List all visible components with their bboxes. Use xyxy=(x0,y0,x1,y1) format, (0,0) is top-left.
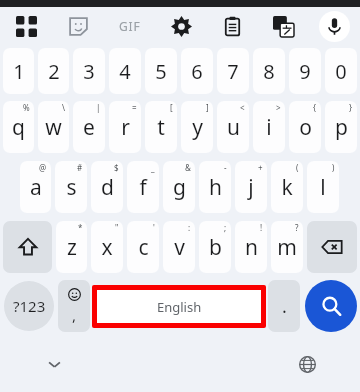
button[interactable]: Search xyxy=(305,280,357,332)
button[interactable]: y xyxy=(181,101,213,153)
button[interactable]: f xyxy=(127,161,159,213)
button[interactable]: Translate xyxy=(258,7,309,45)
button[interactable]: k xyxy=(271,161,303,213)
button[interactable]: h xyxy=(199,161,231,213)
staticText: i xyxy=(266,113,272,142)
staticText: a xyxy=(30,173,42,202)
button[interactable]: Emoji and comma xyxy=(58,280,90,332)
staticText: # xyxy=(77,162,83,173)
staticText: English xyxy=(157,298,202,316)
staticText: $ xyxy=(114,162,119,173)
button[interactable]: l xyxy=(307,161,339,213)
staticText: 5 xyxy=(155,58,167,85)
staticText: @ xyxy=(39,162,47,173)
staticText: 4 xyxy=(119,58,131,85)
button[interactable]: Hide keyboard xyxy=(38,348,70,380)
staticText: " xyxy=(115,222,119,233)
button[interactable]: 3 xyxy=(73,48,105,94)
staticText: [ xyxy=(170,102,173,113)
button[interactable]: Stickers xyxy=(52,7,104,45)
button[interactable]: 0 xyxy=(325,48,357,94)
button[interactable]: Change language xyxy=(291,348,323,380)
staticText: v xyxy=(174,233,185,262)
button[interactable]: e xyxy=(73,101,105,153)
button[interactable]: j xyxy=(235,161,267,213)
staticText: k xyxy=(281,173,293,202)
staticText: GIF xyxy=(119,18,141,34)
staticText: h xyxy=(209,173,222,202)
staticText: ) xyxy=(332,162,335,173)
button[interactable]: g xyxy=(163,161,195,213)
staticText: _ xyxy=(151,162,155,173)
button[interactable]: r xyxy=(109,101,141,153)
button[interactable]: ?123 xyxy=(4,281,54,331)
staticText: ! xyxy=(260,222,263,233)
staticText: . xyxy=(282,294,287,319)
button[interactable]: Voice input xyxy=(309,7,360,45)
staticText: * xyxy=(78,222,83,233)
button[interactable]: i xyxy=(253,101,285,153)
staticText: f xyxy=(139,173,147,202)
button[interactable]: a xyxy=(20,161,51,213)
staticText: ; xyxy=(224,222,227,233)
button[interactable]: 8 xyxy=(253,48,285,94)
staticText: l xyxy=(320,173,326,202)
staticText: 0 xyxy=(335,58,347,85)
staticText: - xyxy=(224,162,227,173)
button[interactable]: p xyxy=(325,101,357,153)
staticText: e xyxy=(83,113,95,142)
button[interactable]: . xyxy=(268,280,300,332)
button[interactable]: Backspace xyxy=(307,221,357,273)
staticText: y xyxy=(192,113,203,142)
button[interactable]: 6 xyxy=(181,48,213,94)
button[interactable]: u xyxy=(217,101,249,153)
button[interactable]: 1 xyxy=(3,48,34,94)
staticText: + xyxy=(258,162,263,173)
staticText: \ xyxy=(62,102,65,113)
button[interactable]: 4 xyxy=(109,48,141,94)
button[interactable]: v xyxy=(163,221,195,273)
staticText: 9 xyxy=(299,58,311,85)
button[interactable]: English xyxy=(97,290,261,323)
button[interactable]: GIF xyxy=(104,7,156,45)
staticText: { xyxy=(313,102,317,113)
button[interactable]: m xyxy=(271,221,303,273)
button[interactable]: w xyxy=(38,101,69,153)
button[interactable]: Shift xyxy=(3,221,52,273)
staticText: ( xyxy=(296,162,299,173)
button[interactable]: 7 xyxy=(217,48,249,94)
button[interactable]: x xyxy=(91,221,123,273)
staticText: o xyxy=(299,113,312,142)
staticText: u xyxy=(227,113,240,142)
button[interactable]: q xyxy=(3,101,34,153)
button[interactable]: d xyxy=(91,161,123,213)
staticText: s xyxy=(66,173,77,202)
button[interactable]: b xyxy=(199,221,231,273)
button[interactable]: Apps xyxy=(0,7,52,45)
staticText: | xyxy=(96,102,101,113)
staticText: 8 xyxy=(263,58,275,85)
staticText: ? xyxy=(295,222,299,233)
button[interactable]: 5 xyxy=(145,48,177,94)
staticText: x xyxy=(101,233,113,262)
staticText: } xyxy=(349,102,353,113)
staticText: > xyxy=(276,102,281,113)
staticText: % xyxy=(23,102,30,113)
button[interactable]: t xyxy=(145,101,177,153)
staticText: t xyxy=(157,113,165,142)
button[interactable]: Settings xyxy=(156,7,207,45)
staticText: 6 xyxy=(191,58,203,85)
staticText: r xyxy=(121,113,130,142)
button[interactable]: n xyxy=(235,221,267,273)
button[interactable]: s xyxy=(55,161,87,213)
button[interactable]: z xyxy=(56,221,87,273)
button[interactable]: 2 xyxy=(38,48,69,94)
button[interactable]: o xyxy=(289,101,321,153)
button[interactable]: c xyxy=(127,221,159,273)
staticText: g xyxy=(173,173,186,202)
staticText: 2 xyxy=(48,58,60,85)
button[interactable]: 9 xyxy=(289,48,321,94)
staticText: b xyxy=(209,233,222,262)
staticText: p xyxy=(335,113,348,142)
button[interactable]: Clipboard xyxy=(207,7,258,45)
